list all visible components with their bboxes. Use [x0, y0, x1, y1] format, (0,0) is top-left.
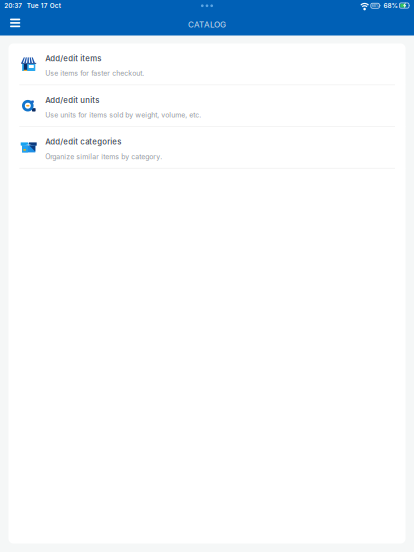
- staticText: Tue 17 Oct: [27, 2, 61, 10]
- staticText: Add/edit categories: [45, 137, 121, 146]
- button[interactable]: Add/edit categories: [8, 127, 405, 168]
- staticText: 68%: [384, 2, 398, 10]
- button[interactable]: Add/edit items: [8, 43, 405, 84]
- staticText: CATALOG: [188, 20, 226, 29]
- button[interactable]: Menu: [0, 11, 30, 35]
- staticText: Use items for faster checkout.: [45, 69, 144, 77]
- staticText: Add/edit items: [45, 54, 101, 63]
- button[interactable]: Add/edit units: [8, 85, 405, 126]
- staticText: Organize similar items by category.: [45, 152, 162, 161]
- staticText: Add/edit units: [45, 95, 99, 105]
- staticText: Use units for items sold by weight, volu…: [45, 111, 201, 119]
- staticText: 68%: [372, 4, 379, 8]
- staticText: 20:37: [4, 2, 22, 10]
